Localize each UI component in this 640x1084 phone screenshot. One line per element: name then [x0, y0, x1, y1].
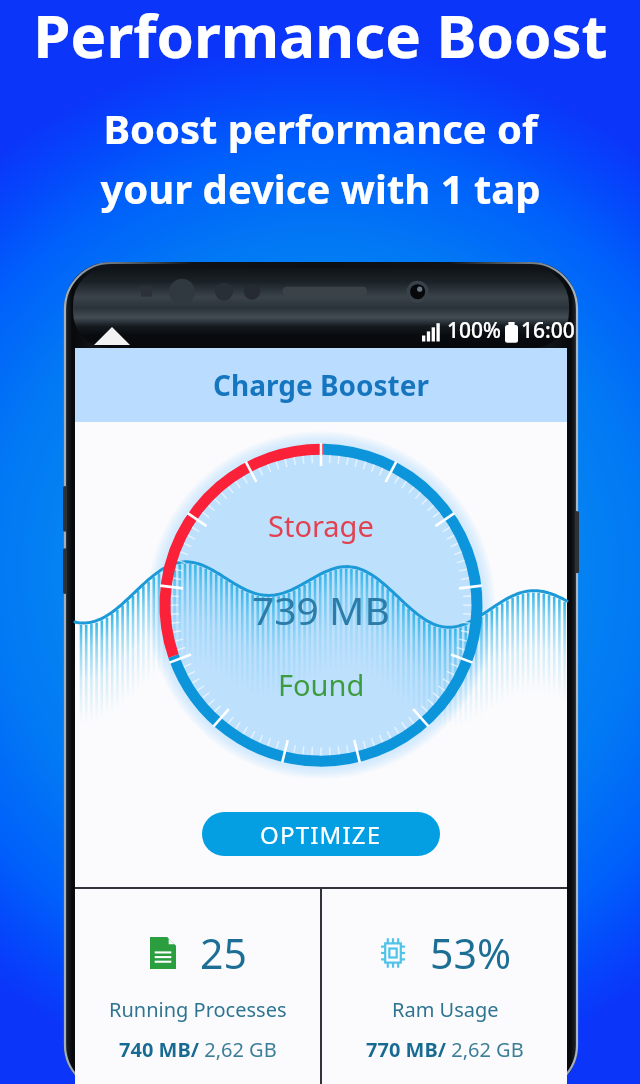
staticText: 100%: [447, 316, 501, 345]
staticText: 16:00: [521, 316, 575, 345]
button[interactable]: 53%: [322, 889, 567, 1084]
button[interactable]: OPTIMIZE: [202, 812, 440, 856]
button[interactable]: 25: [75, 889, 320, 1084]
button[interactable]: Charge Booster: [75, 348, 567, 422]
staticText: Found: [278, 665, 365, 704]
staticText: Ram Usage: [392, 996, 499, 1023]
staticText: 740 MB/: [119, 1036, 199, 1063]
staticText: Boost performance of your device with 1 …: [100, 101, 541, 216]
staticText: OPTIMIZE: [260, 818, 382, 851]
staticText: 739 MB: [252, 583, 390, 636]
staticText: 770 MB/: [366, 1036, 446, 1063]
staticText: 53%: [430, 925, 511, 981]
staticText: 2,62 GB: [199, 1036, 277, 1063]
staticText: Performance Boost: [33, 0, 608, 76]
staticText: 2,62 GB: [446, 1036, 524, 1063]
staticText: Charge Booster: [213, 366, 429, 404]
staticText: 25: [200, 925, 247, 981]
staticText: Storage: [268, 506, 374, 545]
staticText: Running Processes: [109, 996, 287, 1023]
